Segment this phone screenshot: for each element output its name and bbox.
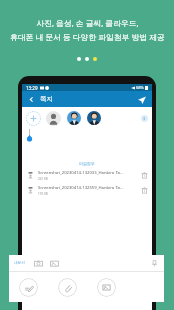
button[interactable]: Voice (149, 258, 159, 268)
button[interactable]: Delete attachment (140, 186, 149, 195)
staticText: 사진, 음성, 손 글씨, 클라우드, (36, 18, 139, 29)
button[interactable]: Screenshot_20230414-132559_Hanbiro Ta... (27, 183, 149, 198)
button[interactable]: Attach file (58, 278, 77, 297)
button[interactable]: 3 recipients (141, 115, 148, 122)
staticText: 파일첨부 (79, 161, 95, 166)
staticText: 170 KB (38, 192, 48, 196)
button[interactable]: Gallery (49, 258, 59, 268)
staticText: 내문서 (14, 261, 25, 266)
staticText: 3 (143, 116, 146, 121)
staticText: 휴대폰 내 문서 등 다양한 파일첨부 방법 제공 (10, 32, 165, 43)
staticText: 241 KB (38, 177, 48, 181)
button[interactable]: Camera (33, 258, 43, 268)
button[interactable]: Back (27, 95, 36, 104)
button[interactable]: Handwriting (19, 278, 38, 297)
button[interactable]: Add recipient (26, 111, 41, 126)
staticText: 13:29 (26, 85, 38, 91)
staticText: 68% (136, 85, 144, 90)
button[interactable]: Screenshot_20230414-132033_Hanbiro Ta... (27, 168, 149, 183)
staticText: Screenshot_20230414-132559_Hanbiro Ta... (38, 185, 124, 191)
staticText: 쪽지 (40, 95, 53, 103)
button[interactable]: Delete attachment (140, 171, 149, 180)
staticText: Screenshot_20230414-132033_Hanbiro Ta... (38, 170, 124, 176)
button[interactable]: Send (136, 94, 147, 105)
button[interactable]: Document (97, 278, 116, 297)
